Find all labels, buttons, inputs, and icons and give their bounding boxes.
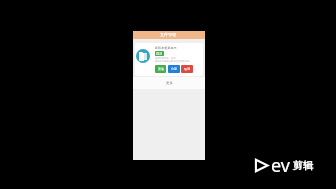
staticText: 剪辑: [293, 159, 313, 172]
button[interactable]: 文件管理: [133, 31, 205, 39]
staticText: 检测到新版本，更新: [155, 57, 176, 60]
staticText: 安装: [158, 67, 164, 71]
staticText: 取消: [184, 67, 190, 71]
button[interactable]: 安装: [155, 65, 166, 73]
staticText: V2.0: [156, 52, 163, 56]
staticText: 分享: [171, 67, 177, 71]
button[interactable]: 更多: [133, 77, 205, 89]
staticText: 更多: [166, 81, 173, 85]
button[interactable]: 分享: [168, 65, 180, 73]
button[interactable]: 取消: [181, 65, 193, 73]
staticText: ev: [271, 153, 290, 178]
other: Play: [255, 159, 268, 172]
staticText: 新版本更新提示: [155, 46, 177, 50]
staticText: 文件管理: [160, 32, 176, 37]
staticText: 更新后可体验全新的文件管理功能: [155, 60, 190, 63]
